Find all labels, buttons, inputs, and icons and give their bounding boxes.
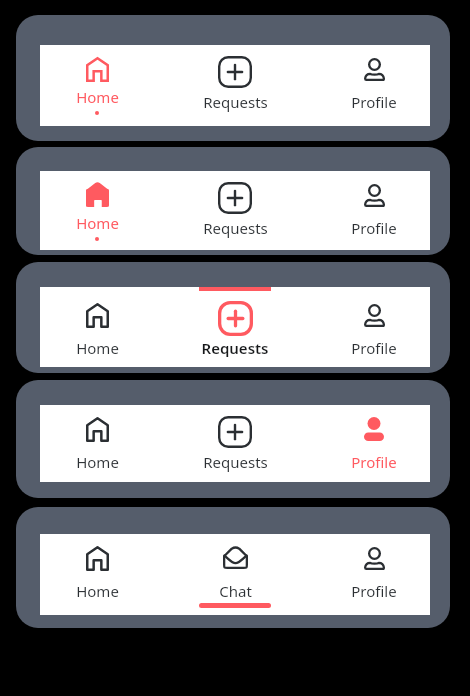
button[interactable]: Home bbox=[41, 405, 153, 482]
other: Requests bbox=[218, 56, 252, 88]
staticText: Home bbox=[76, 338, 119, 358]
other: Home bbox=[86, 546, 109, 571]
other: Profile bbox=[364, 547, 385, 570]
other: Home bbox=[86, 57, 109, 82]
button[interactable]: Profile bbox=[318, 405, 430, 482]
staticText: Profile bbox=[351, 452, 397, 472]
other: Home bbox=[86, 417, 109, 442]
staticText: Home bbox=[76, 452, 119, 472]
staticText: Requests bbox=[203, 218, 268, 238]
other: Requests bbox=[218, 416, 252, 448]
button[interactable]: Requests bbox=[179, 45, 291, 126]
button[interactable]: Home bbox=[41, 45, 153, 126]
other: Chat bbox=[223, 546, 248, 569]
staticText: Requests bbox=[203, 452, 268, 472]
staticText: Home bbox=[76, 581, 119, 601]
button[interactable]: Requests bbox=[179, 171, 291, 250]
other: Profile bbox=[364, 58, 385, 81]
button[interactable]: Chat bbox=[179, 534, 291, 615]
staticText: Profile bbox=[351, 92, 397, 112]
other: Requests bbox=[218, 182, 252, 214]
button[interactable]: Requests bbox=[179, 405, 291, 482]
button[interactable]: Home bbox=[41, 171, 153, 250]
button[interactable]: Profile bbox=[318, 45, 430, 126]
other: Requests bbox=[218, 301, 253, 336]
button[interactable]: Profile bbox=[318, 534, 430, 615]
staticText: Profile bbox=[351, 218, 397, 238]
other: Profile bbox=[364, 304, 385, 327]
button[interactable]: Profile bbox=[318, 287, 430, 367]
staticText: Profile bbox=[351, 581, 397, 601]
staticText: Requests bbox=[203, 92, 268, 112]
button[interactable]: Requests bbox=[179, 287, 291, 367]
staticText: Home bbox=[76, 213, 119, 233]
other: Profile bbox=[364, 417, 384, 441]
staticText: Home bbox=[76, 87, 119, 107]
staticText: Chat bbox=[219, 581, 252, 601]
other: Home bbox=[86, 303, 109, 328]
button[interactable]: Home bbox=[41, 534, 153, 615]
button[interactable]: Home bbox=[41, 287, 153, 367]
staticText: Profile bbox=[351, 338, 397, 358]
staticText: Requests bbox=[201, 338, 269, 358]
other: Profile bbox=[364, 184, 385, 207]
button[interactable]: Profile bbox=[318, 171, 430, 250]
other: Home bbox=[86, 182, 109, 207]
